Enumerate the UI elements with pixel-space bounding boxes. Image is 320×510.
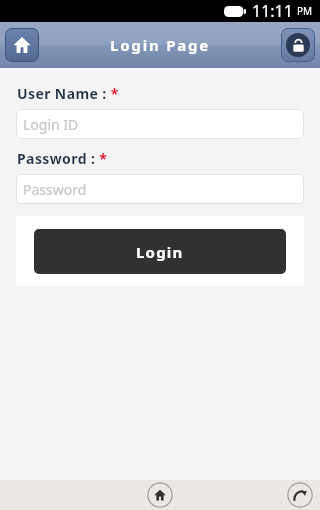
staticText: Login [136, 242, 184, 262]
staticText: Password [23, 180, 87, 199]
button[interactable]: Lock [281, 28, 315, 62]
staticText: PM [297, 4, 313, 18]
button[interactable]: Home [147, 482, 173, 508]
staticText: User Name : * [17, 84, 119, 103]
button[interactable]: Home [5, 28, 39, 62]
staticText: Login ID [23, 115, 79, 134]
staticText: 11:11 [252, 0, 293, 22]
staticText: Login Page [110, 35, 211, 55]
button[interactable]: Password [16, 174, 304, 204]
button[interactable]: Login [34, 229, 286, 274]
button[interactable]: Forward [287, 482, 313, 508]
button[interactable]: Login ID [16, 109, 304, 139]
staticText: Password : * [17, 149, 108, 168]
